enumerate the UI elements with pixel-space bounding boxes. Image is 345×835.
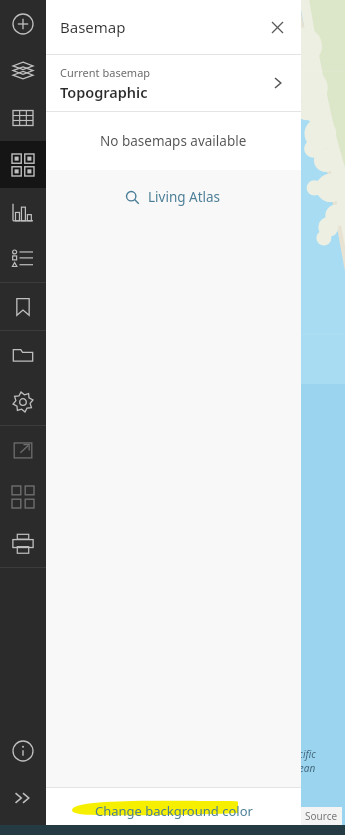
- button[interactable]: Bookmarks: [0, 283, 46, 330]
- button[interactable]: Close: [265, 15, 289, 39]
- button[interactable]: Legend: [0, 235, 46, 282]
- button[interactable]: Add content: [0, 0, 46, 47]
- staticText: Ocean: [301, 761, 316, 775]
- staticText: Basemap: [60, 17, 126, 37]
- button[interactable]: Catalog: [0, 331, 46, 378]
- button[interactable]: Current basemap: [46, 55, 301, 111]
- staticText: No basemaps available: [100, 132, 247, 150]
- button[interactable]: Tables: [0, 94, 46, 141]
- staticText: Living Atlas: [148, 188, 221, 206]
- staticText: Topographic: [60, 82, 148, 102]
- button[interactable]: Expand: [0, 774, 46, 821]
- button[interactable]: Apps: [0, 473, 46, 520]
- button[interactable]: Print: [0, 520, 46, 567]
- button[interactable]: Layers: [0, 47, 46, 94]
- button[interactable]: Change background color: [95, 802, 253, 820]
- button[interactable]: Share: [0, 426, 46, 473]
- button[interactable]: About: [0, 727, 46, 774]
- staticText: Pacific: [301, 747, 316, 761]
- button[interactable]: Basemap: [0, 141, 46, 188]
- staticText: Source: [305, 809, 338, 823]
- button[interactable]: Living Atlas: [116, 182, 231, 212]
- staticText: Current basemap: [60, 65, 151, 80]
- button[interactable]: Charts: [0, 188, 46, 235]
- button[interactable]: Settings: [0, 378, 46, 425]
